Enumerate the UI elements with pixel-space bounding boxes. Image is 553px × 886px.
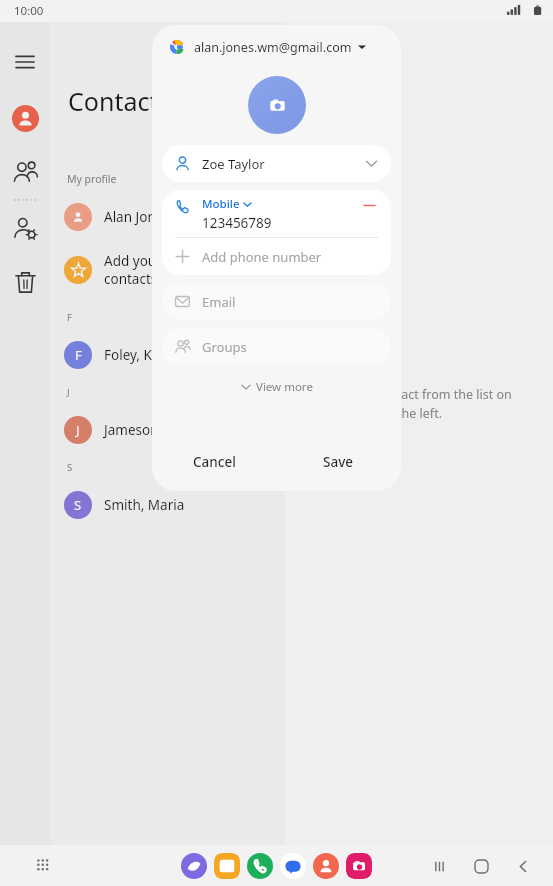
staticText: J: [76, 421, 80, 439]
button[interactable]: Back: [511, 854, 535, 878]
button[interactable]: J: [50, 403, 285, 456]
button[interactable]: alan.jones.wm@gmail.com: [152, 25, 401, 69]
button[interactable]: Camera: [346, 853, 372, 879]
staticText: alan.jones.wm@gmail.com: [194, 39, 352, 56]
button[interactable]: Add phone number: [162, 238, 391, 275]
staticText: Contacts: [68, 84, 171, 118]
staticText: Groups: [202, 338, 247, 356]
staticText: View more: [256, 379, 313, 395]
button[interactable]: Remove phone number: [360, 196, 378, 214]
button[interactable]: My Files: [214, 853, 240, 879]
button[interactable]: Contacts: [5, 98, 45, 138]
staticText: Save: [323, 453, 354, 471]
button[interactable]: Messages: [280, 853, 306, 879]
staticText: 10:00: [14, 3, 44, 19]
button[interactable]: Manage contacts: [5, 208, 45, 248]
staticText: Zoe Taylor: [202, 155, 365, 173]
button[interactable]: Recent apps: [427, 854, 451, 878]
button[interactable]: Groups: [5, 152, 45, 192]
staticText: Mobile: [202, 196, 240, 212]
staticText: Email: [202, 293, 236, 311]
button[interactable]: Samsung Internet: [181, 853, 207, 879]
button[interactable]: Zoe Taylor: [162, 145, 391, 182]
staticText: Cancel: [193, 453, 236, 471]
button[interactable]: Trash: [5, 262, 45, 302]
staticText: Foley, Kelly: [104, 346, 285, 364]
button[interactable]: Alan Jones: [50, 192, 285, 242]
staticText: My profile: [67, 172, 117, 186]
button[interactable]: Add your: [50, 242, 285, 298]
staticText: 123456789: [202, 214, 272, 232]
staticText: F: [67, 311, 72, 324]
staticText: Smith, Maria: [104, 496, 285, 514]
button[interactable]: Phone: [247, 853, 273, 879]
button[interactable]: Email: [162, 283, 391, 320]
staticText: Add your: [104, 252, 162, 270]
staticText: the left.: [397, 405, 442, 422]
staticText: Add phone number: [202, 248, 322, 266]
staticText: S: [74, 496, 82, 514]
button[interactable]: S: [50, 478, 285, 531]
button[interactable]: Open navigation menu: [3, 40, 47, 84]
staticText: F: [75, 346, 82, 364]
button[interactable]: Cancel: [152, 439, 276, 485]
button[interactable]: All apps: [32, 854, 56, 878]
staticText: Alan Jones: [104, 208, 170, 226]
staticText: Jameson, Ben: [104, 421, 285, 439]
button[interactable]: Home: [469, 854, 493, 878]
staticText: J: [67, 386, 70, 399]
button[interactable]: Save: [276, 439, 401, 485]
button[interactable]: Change contact photo: [248, 76, 306, 134]
staticText: Select a contact from the list on: [327, 386, 512, 403]
button[interactable]: Mobile: [162, 190, 391, 237]
button[interactable]: Contacts: [313, 853, 339, 879]
button[interactable]: Groups: [162, 328, 391, 365]
staticText: S: [67, 461, 73, 474]
button[interactable]: View more: [231, 374, 323, 400]
button[interactable]: F: [50, 328, 285, 381]
staticText: contacts: [104, 270, 158, 288]
